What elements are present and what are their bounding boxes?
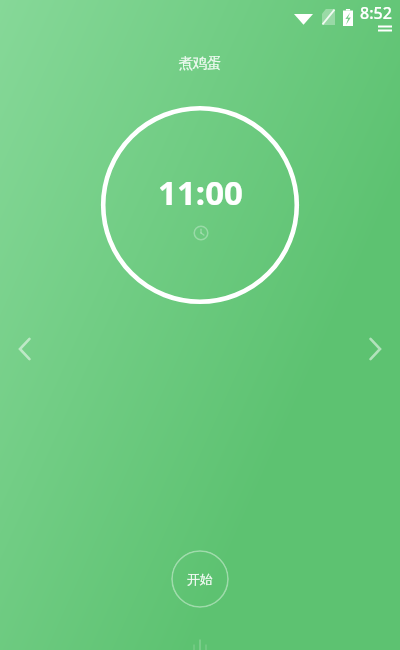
button[interactable]: Next preset: [354, 328, 396, 370]
button[interactable]: 11:00: [100, 105, 300, 305]
staticText: 开始: [187, 571, 213, 587]
button[interactable]: Previous preset: [4, 328, 46, 370]
staticText: 煮鸡蛋: [178, 54, 222, 72]
button[interactable]: 开始: [171, 550, 229, 608]
staticText: 11:00: [158, 170, 243, 215]
staticText: 8:52: [360, 2, 392, 24]
